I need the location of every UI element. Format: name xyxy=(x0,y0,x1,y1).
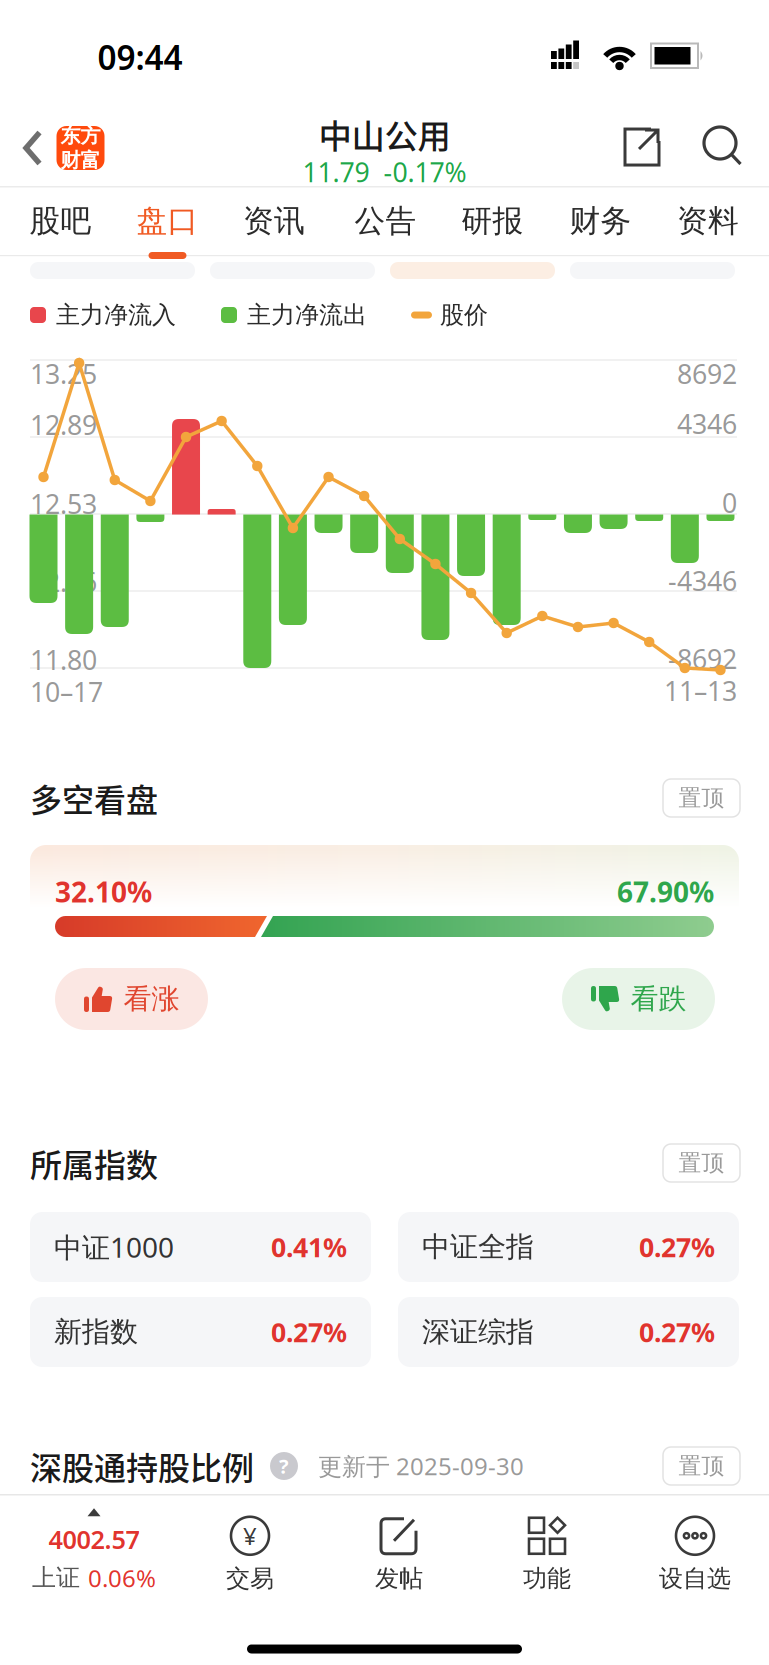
staticText: 上证 xyxy=(32,1563,80,1593)
staticText: 32.10% xyxy=(55,873,152,910)
staticText: 中证全指 xyxy=(422,1230,534,1264)
button[interactable]: 新指数 xyxy=(30,1297,371,1367)
staticText: ¥ xyxy=(243,1520,257,1552)
button[interactable] xyxy=(702,126,744,168)
staticText: 8692 xyxy=(677,356,737,391)
button[interactable]: 盘口 xyxy=(115,190,219,252)
staticText: 所属指数 xyxy=(30,1140,158,1186)
staticText: 11.79 xyxy=(302,154,369,190)
staticText: 中证1000 xyxy=(54,1228,174,1266)
staticText: 置顶 xyxy=(678,1149,724,1177)
staticText: 09:44 xyxy=(97,35,182,79)
button[interactable]: 置顶 xyxy=(663,1144,740,1182)
staticText: 0.27% xyxy=(639,1314,715,1350)
staticText: 12.16 xyxy=(30,564,97,599)
staticText: 67.90% xyxy=(617,873,714,910)
staticText: 0.41% xyxy=(271,1229,347,1265)
button[interactable]: 置顶 xyxy=(663,1447,740,1485)
staticText: 公告 xyxy=(354,202,416,240)
button[interactable]: 研报 xyxy=(440,190,544,252)
staticText: 发帖 xyxy=(375,1564,423,1593)
staticText: 深股通持股比例 xyxy=(30,1443,254,1489)
staticText: -8692 xyxy=(668,641,737,676)
staticText: 多空看盘 xyxy=(30,775,158,821)
button[interactable]: 置顶 xyxy=(663,779,740,817)
staticText: 财富 xyxy=(60,148,100,173)
button[interactable] xyxy=(390,262,555,279)
staticText: 盘口 xyxy=(136,202,198,240)
staticText: 10–17 xyxy=(30,674,103,709)
staticText: 13.25 xyxy=(30,356,97,391)
staticText: 研报 xyxy=(461,202,523,240)
staticText: 资讯 xyxy=(243,202,305,240)
staticText: 新指数 xyxy=(54,1315,138,1349)
staticText: 深证综指 xyxy=(422,1315,534,1349)
staticText: 东方 xyxy=(60,123,100,148)
staticText: 4002.57 xyxy=(48,1522,139,1556)
staticText: 12.53 xyxy=(30,486,97,521)
staticText: 设自选 xyxy=(659,1564,731,1593)
button[interactable]: 中证全指 xyxy=(398,1212,739,1282)
staticText: ? xyxy=(279,1453,289,1479)
staticText: 0.06% xyxy=(88,1562,156,1594)
button[interactable]: 公告 xyxy=(333,190,437,252)
staticText: 4346 xyxy=(677,406,737,441)
staticText: -4346 xyxy=(668,563,737,598)
button[interactable]: 中证1000 xyxy=(30,1212,371,1282)
staticText: 交易 xyxy=(226,1564,274,1593)
button[interactable]: 资料 xyxy=(656,190,760,252)
staticText: 置顶 xyxy=(678,784,724,812)
staticText: 0 xyxy=(722,485,737,520)
staticText: 功能 xyxy=(523,1564,571,1593)
button[interactable]: 东方 xyxy=(23,126,104,170)
button[interactable]: ¥ xyxy=(180,1493,320,1613)
staticText: 0.27% xyxy=(271,1314,347,1350)
staticText: 股吧 xyxy=(29,202,91,240)
button[interactable]: 财务 xyxy=(548,190,652,252)
button[interactable]: 资讯 xyxy=(222,190,326,252)
staticText: 财务 xyxy=(569,202,631,240)
button[interactable]: 看涨 xyxy=(55,968,208,1030)
button[interactable] xyxy=(620,125,664,169)
button[interactable]: 设自选 xyxy=(625,1493,765,1613)
staticText: 看涨 xyxy=(123,982,179,1016)
button[interactable]: 深证综指 xyxy=(398,1297,739,1367)
staticText: 11–13 xyxy=(664,673,737,708)
staticText: 股价 xyxy=(440,300,488,330)
staticText: 主力净流出 xyxy=(247,300,367,330)
button[interactable]: 发帖 xyxy=(329,1493,469,1613)
staticText: 0.27% xyxy=(639,1229,715,1265)
staticText: 看跌 xyxy=(630,982,686,1016)
staticText: 置顶 xyxy=(678,1452,724,1480)
staticText: 主力净流入 xyxy=(56,300,176,330)
staticText: -0.17% xyxy=(383,154,466,190)
button[interactable]: 股吧 xyxy=(8,190,112,252)
button[interactable]: 功能 xyxy=(477,1493,617,1613)
button[interactable]: 4002.57 xyxy=(8,1491,180,1611)
staticText: 中山公用 xyxy=(318,110,450,158)
staticText: 11.80 xyxy=(30,642,97,677)
button[interactable]: 看跌 xyxy=(562,968,715,1030)
staticText: 12.89 xyxy=(30,407,97,442)
staticText: 资料 xyxy=(677,202,739,240)
staticText: 更新于 2025-09-30 xyxy=(318,1450,524,1482)
